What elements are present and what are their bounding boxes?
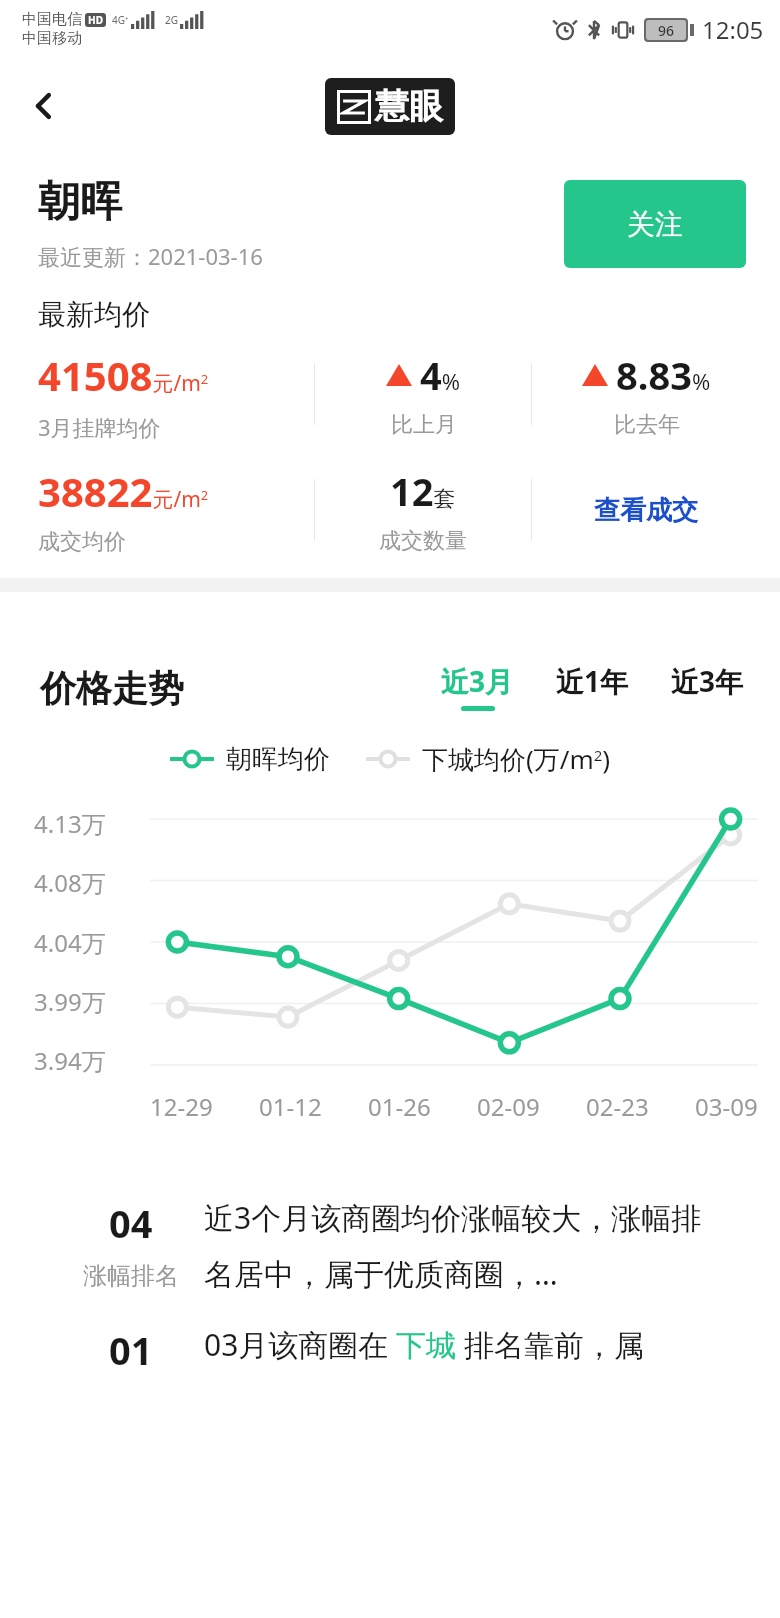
staticText: 96 [658, 21, 675, 40]
button[interactable]: Back [16, 78, 72, 134]
staticText: 01-12 [259, 1090, 322, 1123]
staticText: 12:05 [702, 13, 764, 46]
staticText: 01-26 [368, 1090, 431, 1123]
staticText: 3月挂牌均价 [38, 412, 161, 440]
staticText: 近1年 [556, 662, 629, 700]
button[interactable]: 近3年 [669, 662, 746, 711]
staticText: 12-29 [150, 1090, 213, 1123]
staticText: 查看成交 [594, 494, 698, 527]
staticText: 最近更新：2021-03-16 [38, 241, 263, 271]
staticText: 04 [109, 1197, 153, 1249]
staticText: 涨幅排名 [83, 1261, 179, 1291]
staticText: 最新均价 [38, 297, 150, 332]
staticText: 4.04万 [34, 926, 106, 959]
staticText: 关注 [627, 207, 683, 242]
staticText: 成交数量 [379, 527, 467, 555]
button[interactable]: 近1年 [554, 662, 631, 711]
staticText: 4% [420, 349, 461, 401]
staticText: 03月该商圈在 下城 排名靠前，属 [204, 1324, 644, 1365]
staticText: 12套 [390, 465, 456, 517]
staticText: 38822元/m2 [38, 464, 209, 518]
staticText: 朝晖均价 [226, 743, 330, 776]
staticText: 成交均价 [38, 528, 126, 556]
button[interactable]: 查看成交 [590, 488, 702, 533]
staticText: 4.13万 [34, 807, 106, 840]
staticText: 8.83% [616, 349, 711, 401]
staticText: 4G⁺ [112, 13, 129, 27]
staticText: 慧眼 [375, 85, 443, 128]
staticText: 近3年 [671, 662, 744, 700]
staticText: 中国电信 [22, 10, 82, 29]
staticText: 2G [165, 13, 178, 27]
staticText: HD [88, 13, 103, 27]
staticText: 4.08万 [34, 866, 106, 899]
staticText: 3.99万 [34, 985, 106, 1018]
staticText: 03-09 [695, 1090, 758, 1123]
staticText: 02-09 [477, 1090, 540, 1123]
staticText: 近3个月该商圈均价涨幅较大，涨幅排名居中，属于优质商圈，… [204, 1197, 714, 1294]
staticText: 中国移动 [22, 29, 82, 48]
staticText: 41508元/m2 [38, 348, 209, 402]
staticText: 02-23 [586, 1090, 649, 1123]
button[interactable]: 01 [42, 1294, 738, 1376]
button[interactable]: 近3月 [439, 662, 516, 711]
button[interactable]: 关注 [564, 180, 746, 268]
staticText: 朝晖 [38, 176, 122, 229]
staticText: 比上月 [391, 411, 457, 439]
staticText: 下城均价(万/m2) [422, 741, 611, 777]
staticText: 01 [109, 1324, 153, 1376]
staticText: 比去年 [614, 411, 680, 439]
button[interactable]: 04 [42, 1167, 738, 1294]
staticText: 近3月 [441, 662, 514, 700]
staticText: 价格走势 [40, 666, 184, 711]
staticText: 3.94万 [34, 1044, 106, 1077]
